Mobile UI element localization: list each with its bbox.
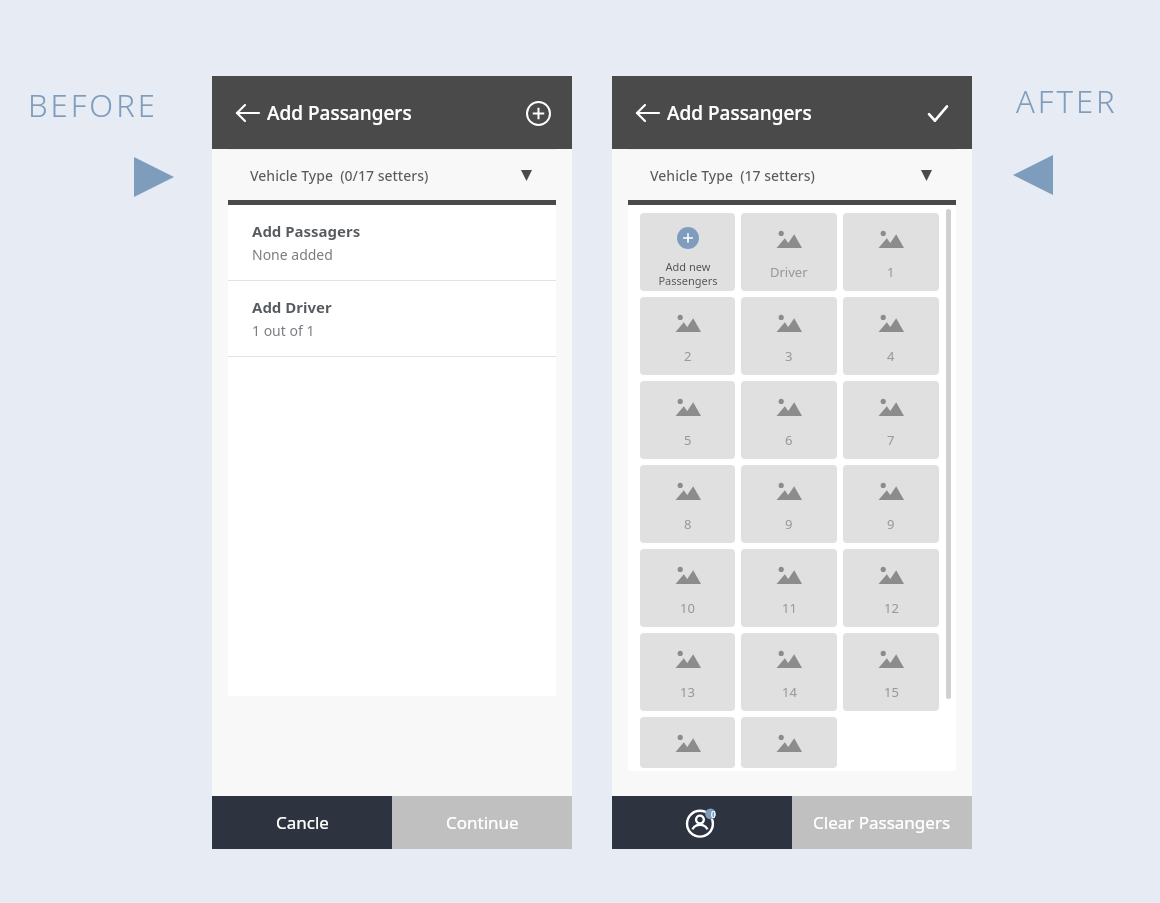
staticText: Add Passangers — [267, 100, 412, 126]
staticText: 15 — [884, 683, 899, 701]
staticText: 14 — [782, 683, 797, 701]
button[interactable]: Passengers — [612, 796, 792, 849]
staticText: 5 — [684, 431, 692, 449]
staticText: Add Driver — [252, 297, 332, 317]
button[interactable]: Add Passagers — [228, 205, 556, 280]
staticText: 6 — [785, 431, 793, 449]
button[interactable]: 6 — [741, 381, 837, 459]
staticText: 9 — [887, 515, 895, 533]
staticText: 2 — [684, 347, 692, 365]
button[interactable]: Confirm — [918, 93, 958, 133]
button[interactable]: Expand vehicle type — [912, 161, 940, 189]
button[interactable]: Back — [628, 93, 668, 133]
button[interactable]: Add — [518, 93, 558, 133]
staticText: Add Passagers — [252, 221, 361, 241]
staticText: Continue — [446, 811, 519, 834]
staticText: 9 — [785, 515, 793, 533]
button[interactable]: 14 — [741, 633, 837, 711]
button[interactable]: 11 — [741, 549, 837, 627]
button[interactable]: 2 — [640, 297, 735, 375]
button[interactable]: 9 — [843, 465, 939, 543]
staticText: Add Passangers — [667, 100, 812, 126]
button[interactable]: 12 — [843, 549, 939, 627]
button[interactable]: Cancle — [212, 796, 392, 849]
staticText: Vehicle Type (17 setters) — [650, 166, 815, 185]
staticText: Driver — [770, 263, 808, 281]
staticText: BEFORE — [28, 84, 158, 126]
staticText: 7 — [887, 431, 895, 449]
button[interactable]: Add new Passengers — [640, 213, 735, 291]
staticText: AFTER — [1016, 80, 1118, 122]
staticText: Vehicle Type (0/17 setters) — [250, 166, 429, 185]
button[interactable]: 7 — [843, 381, 939, 459]
staticText: Clear Passangers — [813, 811, 951, 834]
staticText: 13 — [680, 683, 695, 701]
button[interactable]: Driver — [741, 213, 837, 291]
button[interactable]: 8 — [640, 465, 735, 543]
staticText: Cancle — [276, 811, 329, 834]
button[interactable]: 17 — [741, 717, 837, 768]
staticText: 1 — [887, 263, 895, 281]
button[interactable]: Back — [228, 93, 268, 133]
button[interactable]: 10 — [640, 549, 735, 627]
button[interactable]: 1 — [843, 213, 939, 291]
staticText: 11 — [782, 599, 797, 617]
button[interactable]: 5 — [640, 381, 735, 459]
staticText: 4 — [887, 347, 895, 365]
staticText: 0 — [711, 809, 716, 820]
button[interactable]: 3 — [741, 297, 837, 375]
staticText: 8 — [684, 515, 692, 533]
staticText: None added — [252, 245, 333, 264]
button[interactable]: 15 — [843, 633, 939, 711]
staticText: 3 — [785, 347, 793, 365]
staticText: 10 — [680, 599, 695, 617]
button[interactable]: 16 — [640, 717, 735, 768]
button[interactable]: Clear Passangers — [792, 796, 972, 849]
button[interactable]: Expand vehicle type — [512, 161, 540, 189]
button[interactable]: 4 — [843, 297, 939, 375]
staticText: 1 out of 1 — [252, 321, 315, 340]
button[interactable]: Add Driver — [228, 281, 556, 356]
button[interactable]: Continue — [392, 796, 572, 849]
button[interactable]: 13 — [640, 633, 735, 711]
staticText: Add new Passengers — [658, 259, 718, 288]
other: Passengers — [683, 804, 721, 842]
staticText: 12 — [884, 599, 899, 617]
button[interactable]: 9 — [741, 465, 837, 543]
